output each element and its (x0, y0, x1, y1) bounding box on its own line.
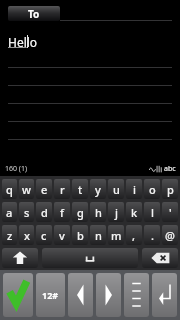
button[interactable]: p (162, 179, 178, 199)
button[interactable]: Backspace (142, 248, 178, 268)
staticText: To (28, 7, 40, 21)
button[interactable]: n (90, 225, 106, 245)
button[interactable]: , (126, 225, 142, 245)
button[interactable]: Shift (2, 248, 38, 268)
staticText: g (77, 205, 84, 220)
button[interactable]: k (126, 202, 142, 222)
button[interactable]: Options (124, 273, 149, 317)
staticText: 12# (42, 289, 59, 301)
button[interactable]: w (19, 179, 34, 199)
staticText: Hello (8, 34, 38, 50)
button[interactable]: z (2, 225, 17, 245)
staticText: e (41, 182, 48, 197)
button[interactable]: j (108, 202, 124, 222)
staticText: m (111, 228, 122, 243)
staticText: h (95, 205, 102, 220)
staticText: x (24, 228, 30, 243)
staticText: u (113, 182, 120, 197)
button[interactable]: . (144, 225, 160, 245)
staticText: s (24, 205, 30, 220)
button[interactable]: h (90, 202, 106, 222)
button[interactable]: ' (162, 202, 178, 222)
button[interactable]: i (126, 179, 142, 199)
button[interactable]: q (2, 179, 17, 199)
button[interactable]: Move right (96, 273, 121, 317)
button[interactable]: o (144, 179, 160, 199)
button[interactable]: v (54, 225, 70, 245)
button[interactable]: a (2, 202, 17, 222)
button[interactable]: Enter (152, 273, 177, 317)
staticText: n (95, 228, 102, 243)
button[interactable]: Send (3, 273, 33, 317)
staticText: p (167, 182, 174, 197)
staticText: y (95, 182, 101, 197)
button[interactable]: 12# (36, 273, 65, 317)
staticText: d (41, 205, 48, 220)
button[interactable]: @ (162, 225, 178, 245)
staticText: b (77, 228, 84, 243)
button[interactable]: d (36, 202, 52, 222)
staticText: v (59, 228, 65, 243)
staticText: abc (164, 164, 176, 174)
button[interactable]: l (144, 202, 160, 222)
staticText: i (133, 182, 136, 197)
button[interactable]: g (72, 202, 88, 222)
staticText: o (149, 182, 156, 197)
staticText: a (6, 205, 13, 220)
button[interactable]: y (90, 179, 106, 199)
button[interactable]: c (36, 225, 52, 245)
staticText: t (78, 182, 83, 197)
staticText: l (151, 205, 154, 220)
button[interactable]: t (72, 179, 88, 199)
staticText: , (132, 228, 136, 243)
button[interactable]: u (108, 179, 124, 199)
button[interactable]: Space (42, 248, 138, 268)
staticText: ' (169, 205, 172, 220)
button[interactable]: m (108, 225, 124, 245)
staticText: 160 (1) (5, 164, 28, 174)
staticText: w (22, 182, 31, 197)
staticText: f (60, 205, 64, 220)
staticText: j (115, 205, 118, 220)
staticText: @ (165, 228, 175, 243)
staticText: q (6, 182, 13, 197)
button[interactable]: To (8, 6, 60, 21)
staticText: c (41, 228, 47, 243)
button[interactable]: x (19, 225, 34, 245)
staticText: . (151, 228, 154, 243)
button[interactable]: s (19, 202, 34, 222)
button[interactable]: Move left (68, 273, 93, 317)
button[interactable]: r (54, 179, 70, 199)
button[interactable]: f (54, 202, 70, 222)
staticText: k (131, 205, 138, 220)
button[interactable]: e (36, 179, 52, 199)
staticText: z (7, 228, 13, 243)
staticText: r (60, 182, 65, 197)
button[interactable]: b (72, 225, 88, 245)
button[interactable] (60, 5, 180, 21)
